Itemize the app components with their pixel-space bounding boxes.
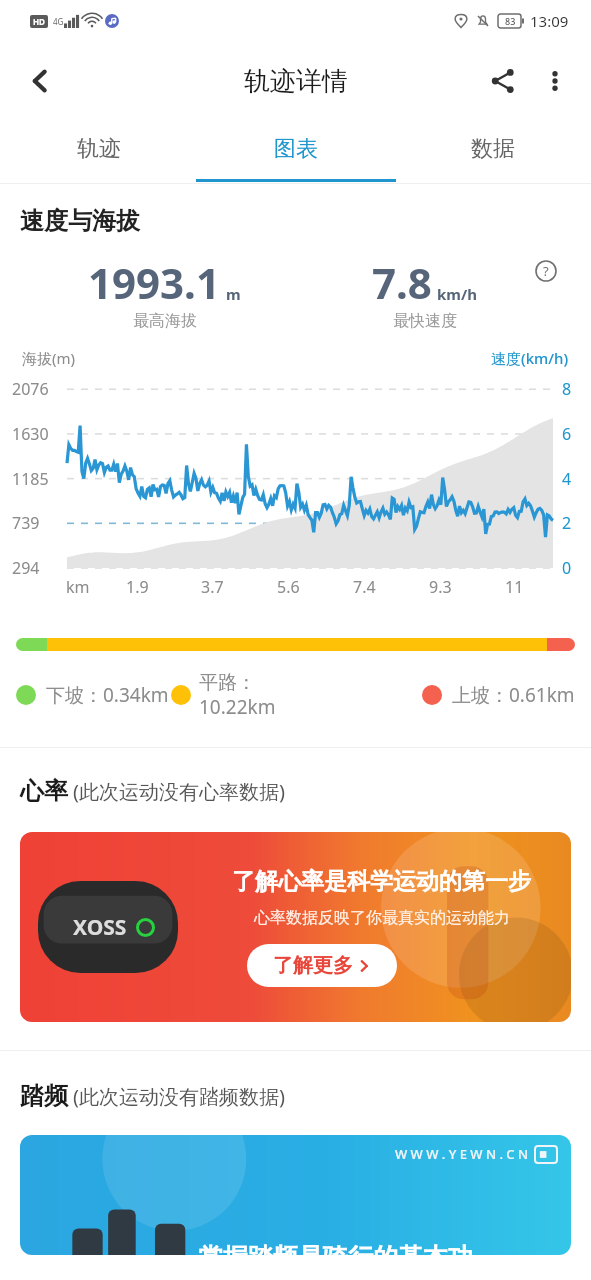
staticText: 心率数据反映了你最真实的运动能力 (254, 908, 510, 928)
staticText: ? (543, 262, 549, 280)
staticText: 0 (562, 557, 572, 579)
staticText: W W W . Y E W N . C N (395, 1145, 529, 1163)
staticText: 平路： 10.22km (199, 671, 276, 719)
staticText: 11 (505, 576, 524, 598)
staticText: 294 (12, 557, 40, 579)
staticText: 海拔(m) (22, 348, 76, 368)
staticText: 4G (53, 16, 64, 27)
button[interactable]: Help (529, 254, 563, 288)
staticText: 9.3 (429, 576, 452, 598)
staticText: 83 (505, 15, 516, 27)
staticText: m (226, 284, 241, 304)
staticText: 1993.1 (88, 254, 220, 311)
staticText: HD (33, 16, 45, 27)
staticText: km/h (437, 284, 477, 304)
staticText: 7.4 (353, 576, 376, 598)
staticText: XOSS (73, 913, 127, 942)
staticText: 2 (562, 512, 572, 534)
staticText: 5.6 (277, 576, 300, 598)
staticText: 3.7 (201, 576, 224, 598)
button[interactable]: 了解更多 (247, 944, 397, 987)
staticText: 踏频 (20, 1081, 68, 1111)
staticText: (此次运动没有踏频数据) (73, 1083, 285, 1110)
button[interactable]: 轨迹 (0, 120, 197, 183)
staticText: km (66, 576, 90, 598)
staticText: 最快速度 (393, 311, 457, 331)
staticText: 8 (562, 378, 572, 400)
button[interactable]: Share (477, 55, 529, 107)
button[interactable]: 图表 (197, 120, 394, 183)
button[interactable]: Back (14, 55, 66, 107)
staticText: 6 (562, 423, 572, 445)
button[interactable]: W W W . Y E W N . C N (20, 1135, 571, 1255)
staticText: 了解心率是科学运动的第一步 (232, 867, 531, 896)
staticText: 心率 (20, 776, 68, 806)
staticText: 了解更多 (273, 953, 353, 978)
staticText: 掌握踏频是骑行的基本功 (198, 1242, 473, 1255)
staticText: 上坡：0.61km (452, 682, 575, 708)
staticText: 1.9 (126, 576, 149, 598)
staticText: (此次运动没有心率数据) (73, 778, 285, 805)
staticText: 1630 (12, 423, 49, 445)
staticText: 轨迹详情 (244, 65, 348, 98)
staticText: 轨迹 (77, 135, 121, 163)
staticText: 4 (562, 468, 572, 490)
button[interactable]: More options (529, 55, 581, 107)
staticText: 13:09 (530, 11, 569, 31)
staticText: 速度(km/h) (491, 348, 569, 368)
staticText: 739 (12, 512, 40, 534)
staticText: 数据 (471, 135, 515, 163)
staticText: 最高海拔 (133, 311, 197, 331)
staticText: 7.8 (372, 254, 432, 311)
button[interactable]: 数据 (394, 120, 591, 183)
button[interactable]: XOSS (20, 832, 571, 1022)
staticText: 下坡：0.34km (46, 682, 169, 708)
staticText: 速度与海拔 (20, 206, 140, 236)
staticText: 2076 (12, 378, 49, 400)
staticText: 图表 (274, 135, 318, 163)
staticText: 1185 (12, 468, 49, 490)
